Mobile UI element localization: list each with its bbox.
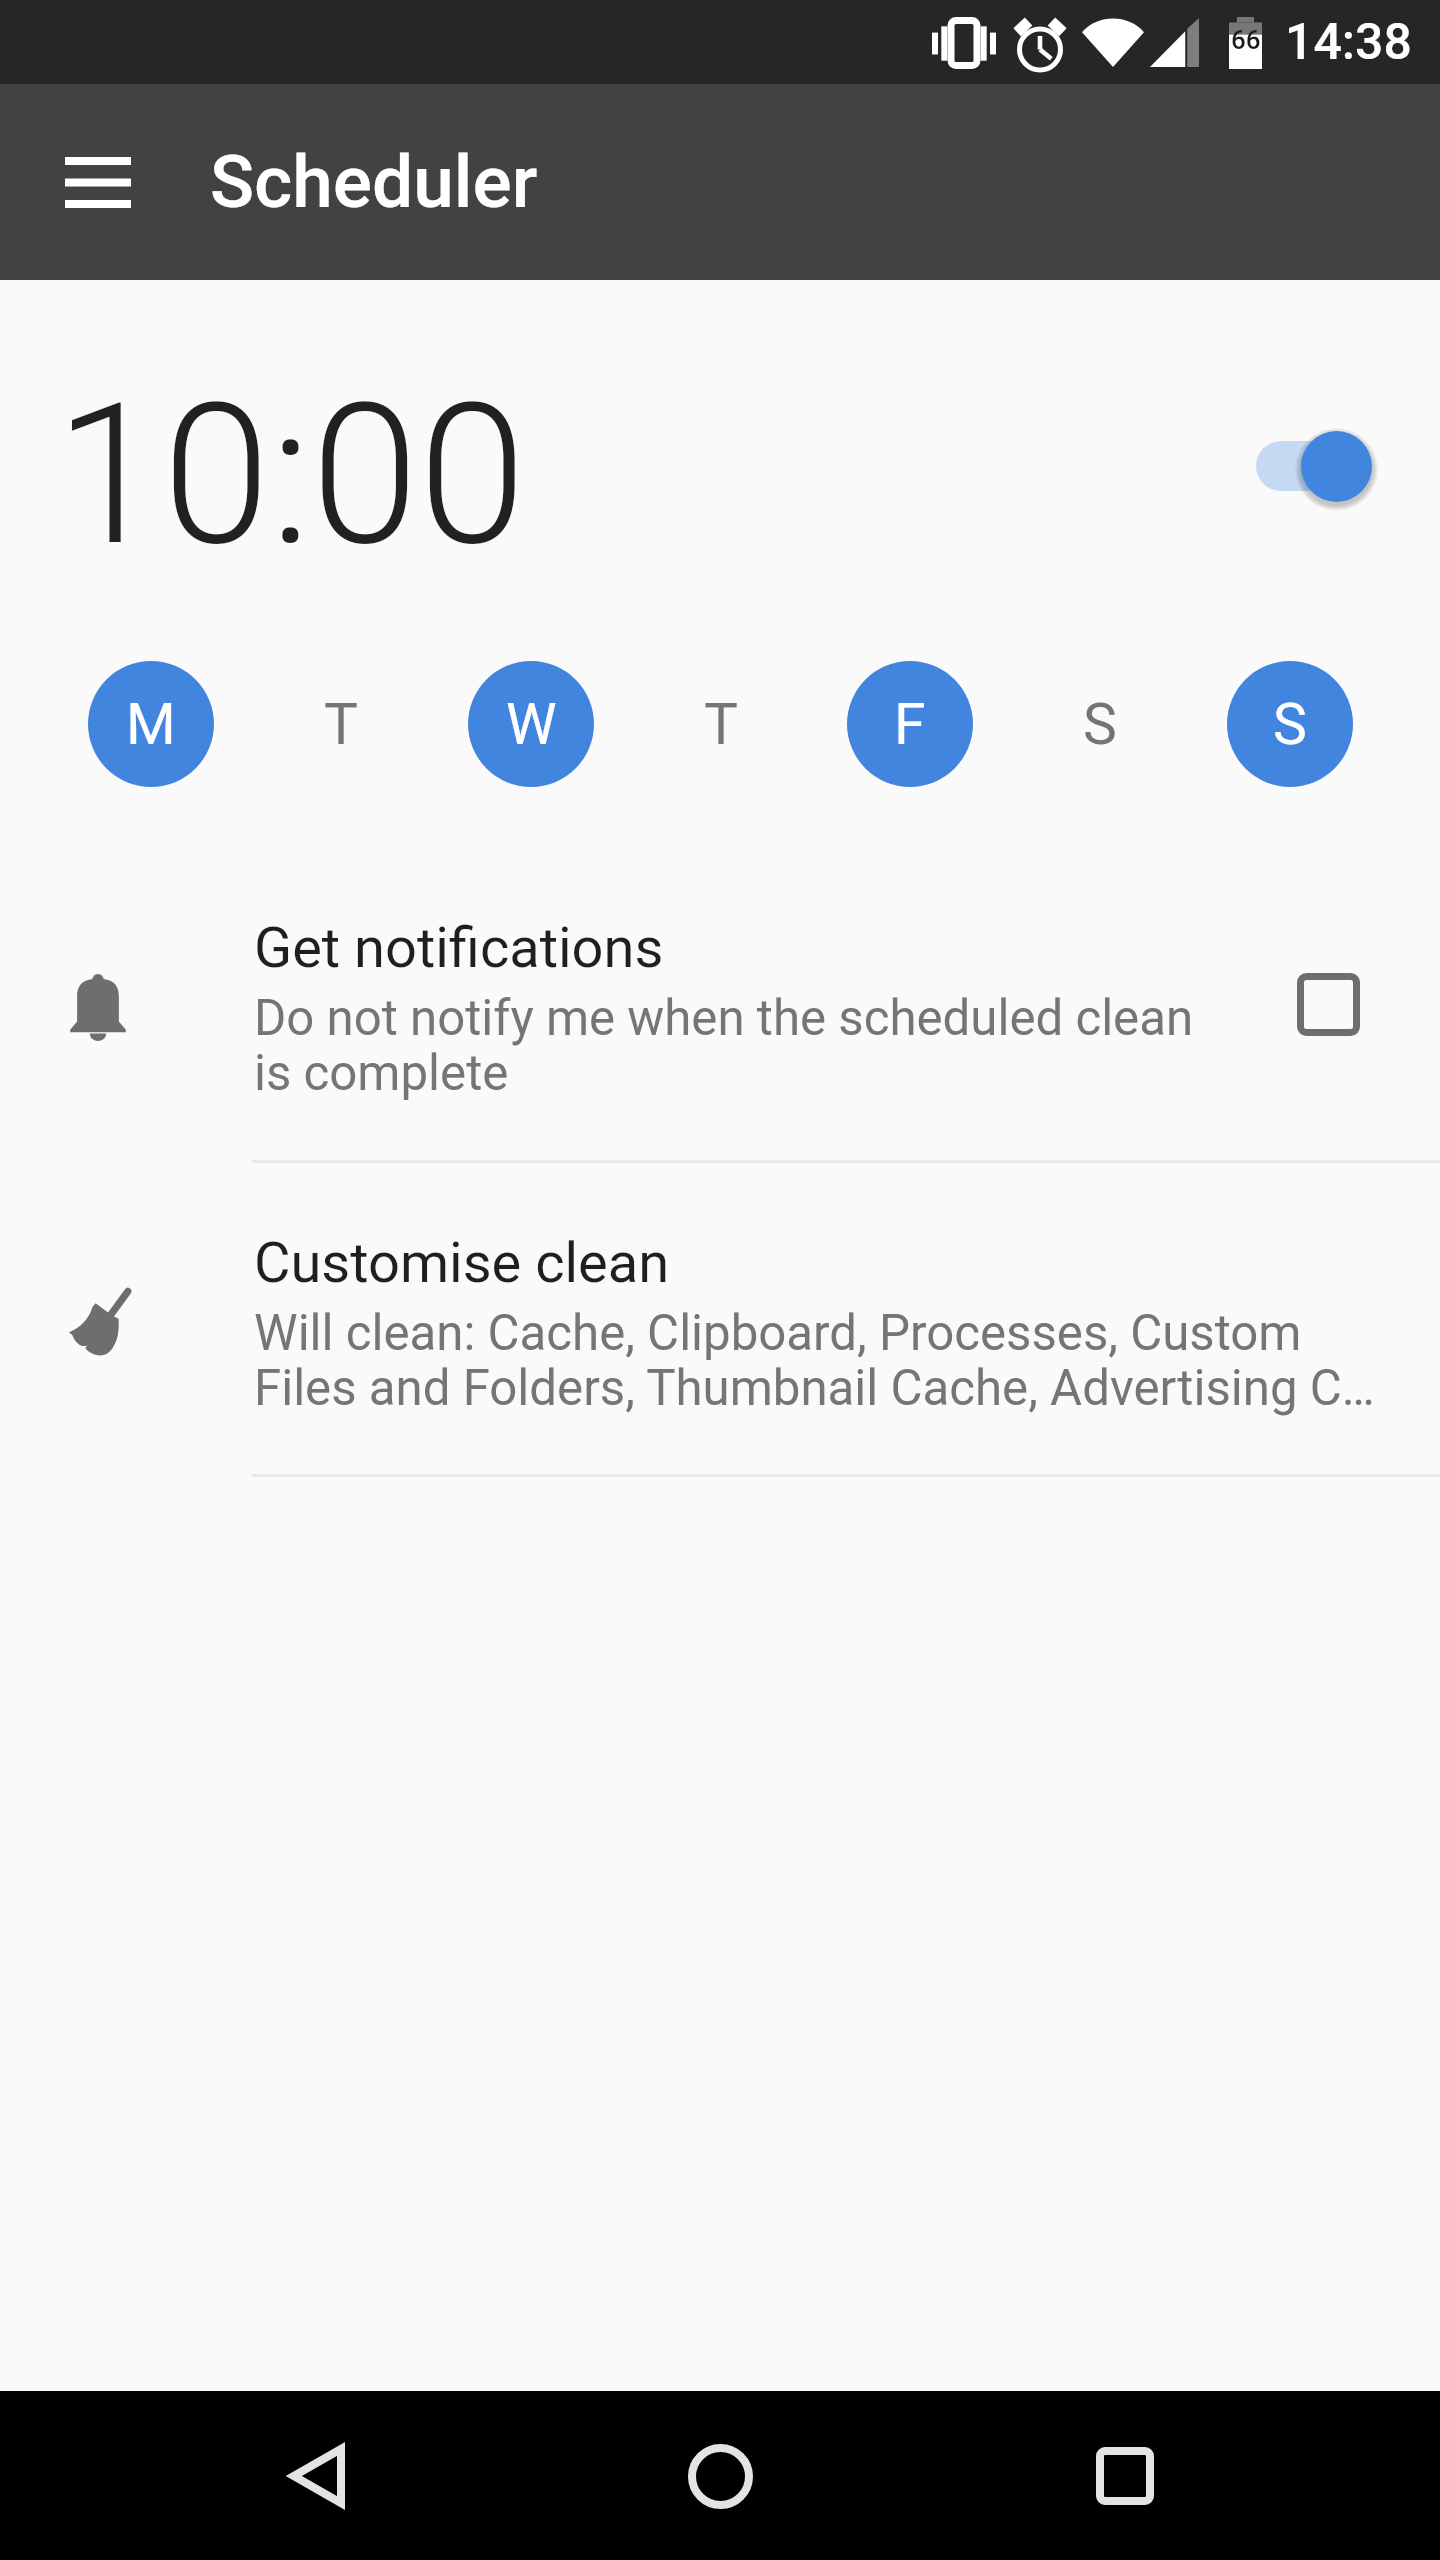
staticText: Scheduler xyxy=(210,139,538,225)
button[interactable]: Recent apps xyxy=(1070,2421,1180,2531)
button[interactable]: Open navigation menu xyxy=(51,135,145,229)
button[interactable]: Customise clean xyxy=(0,1195,1440,1476)
button[interactable]: F xyxy=(847,661,973,787)
staticText: T xyxy=(324,691,359,758)
staticText: Do not notify me when the scheduled clea… xyxy=(254,989,1214,1102)
staticText: W xyxy=(506,691,557,758)
staticText: Will clean: Cache, Clipboard, Processes,… xyxy=(254,1304,1394,1417)
staticText: F xyxy=(894,691,926,758)
button[interactable]: Back xyxy=(261,2421,371,2531)
staticText: T xyxy=(704,691,739,758)
staticText: Customise clean xyxy=(254,1230,670,1296)
staticText: 14:38 xyxy=(1285,13,1412,72)
button[interactable]: Enable schedule xyxy=(1244,421,1386,511)
staticText: S xyxy=(1273,691,1307,758)
button[interactable]: Home xyxy=(665,2421,775,2531)
staticText: S xyxy=(1083,691,1117,758)
button[interactable]: 10:00 xyxy=(55,362,527,589)
button[interactable]: W xyxy=(468,661,594,787)
staticText: 66 xyxy=(1231,25,1261,55)
button[interactable]: S xyxy=(1227,661,1353,787)
button[interactable]: Notifications xyxy=(1290,966,1366,1042)
button[interactable]: Get notifications xyxy=(0,880,1440,1162)
staticText: Get notifications xyxy=(254,915,664,981)
staticText: M xyxy=(126,691,176,758)
button[interactable]: T xyxy=(658,661,784,787)
button[interactable]: S xyxy=(1037,661,1163,787)
button[interactable]: M xyxy=(88,661,214,787)
button[interactable]: T xyxy=(278,661,404,787)
